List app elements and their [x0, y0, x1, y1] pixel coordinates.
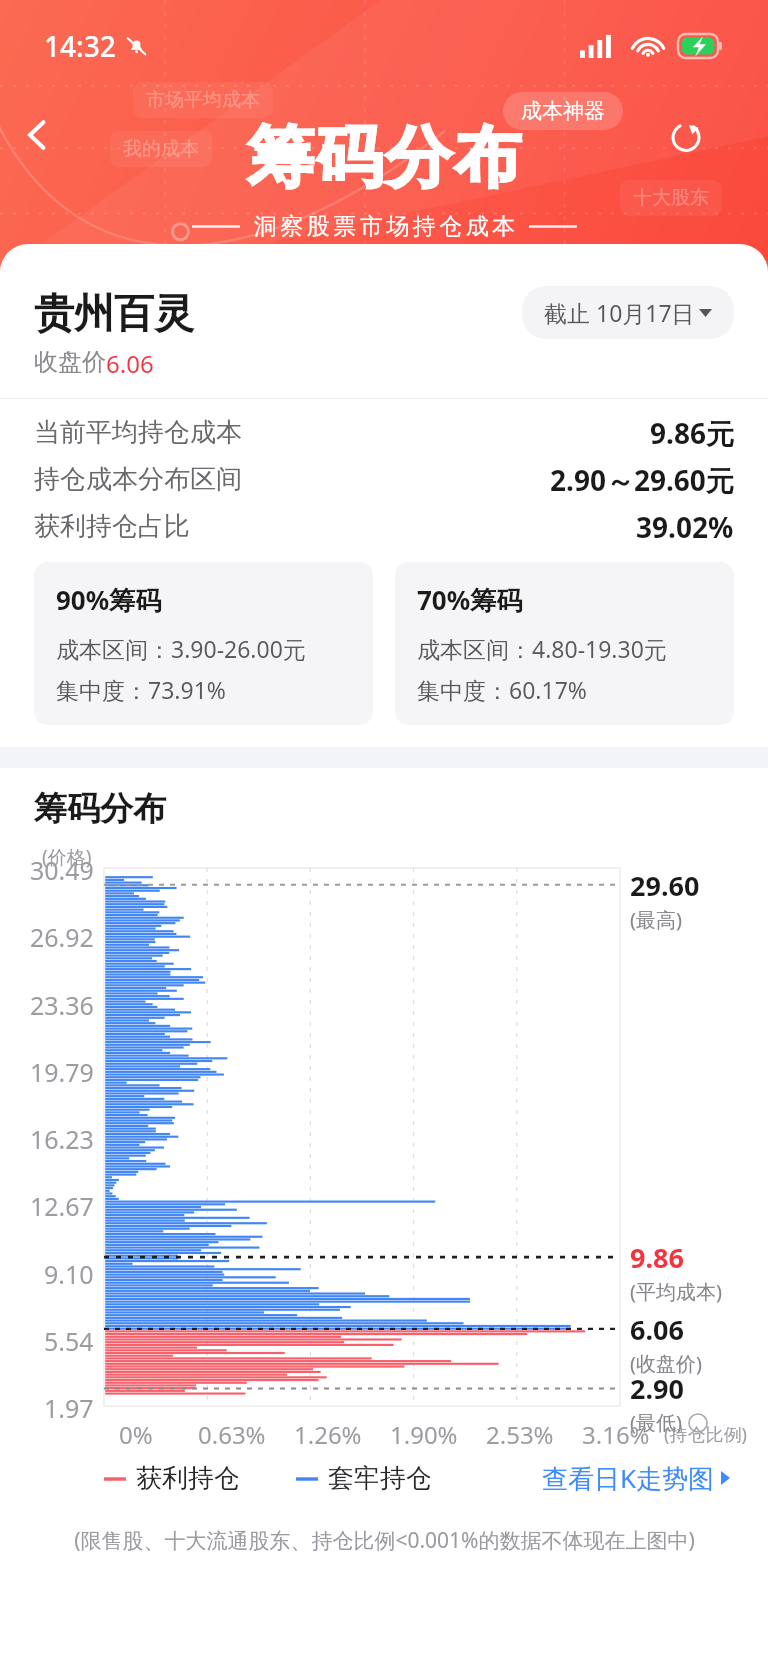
staticText: 30.49 — [30, 853, 94, 887]
staticText: 6.06 — [106, 347, 154, 380]
staticText: 截止 10月17日 — [544, 297, 695, 328]
button[interactable]: Back — [8, 106, 66, 164]
staticText: 我的成本 — [123, 137, 199, 161]
other: Help — [688, 1413, 708, 1433]
staticText: 洞察股票市场持仓成本 — [252, 212, 517, 241]
button[interactable]: Refresh — [658, 108, 714, 164]
staticText: 获利持仓占比 — [34, 510, 190, 543]
button[interactable]: 截止 10月17日 — [522, 286, 734, 339]
button[interactable]: 70%筹码 — [395, 562, 734, 725]
staticText: 1.97 — [44, 1391, 94, 1425]
staticText: 39.02% — [636, 508, 734, 546]
staticText: 成本区间：3.90-26.00元 — [56, 633, 306, 664]
button[interactable]: 成本神器 — [503, 92, 623, 130]
staticText: (价格) — [42, 844, 92, 870]
staticText: (最高) — [630, 906, 682, 933]
staticText: (收盘价) — [630, 1350, 702, 1377]
staticText: (限售股、十大流通股东、持仓比例<0.001%的数据不体现在上图中) — [74, 1526, 695, 1555]
staticText: 1.90% — [390, 1418, 458, 1451]
staticText: 3.16% — [582, 1418, 650, 1451]
staticText: 9.10 — [44, 1257, 94, 1291]
staticText: (持仓比例) — [664, 1422, 747, 1447]
button[interactable]: 套牢持仓 — [296, 1458, 432, 1499]
staticText: 套牢持仓 — [328, 1462, 432, 1495]
staticText: 0.63% — [198, 1418, 266, 1451]
staticText: 14:32 — [44, 27, 116, 65]
staticText: 成本区间：4.80-19.30元 — [417, 633, 667, 664]
staticText: 当前平均持仓成本 — [34, 416, 242, 449]
button[interactable]: 获利持仓 — [104, 1458, 240, 1499]
staticText: (最低) — [630, 1409, 682, 1436]
staticText: 9.86 — [630, 1239, 684, 1276]
button[interactable]: 查看日K走势图 — [538, 1456, 734, 1500]
staticText: 成本神器 — [521, 98, 605, 124]
staticText: 26.92 — [30, 920, 94, 954]
staticText: (平均成本) — [630, 1278, 722, 1305]
staticText: 19.79 — [30, 1055, 94, 1089]
staticText: 23.36 — [30, 988, 94, 1022]
staticText: 2.90～29.60元 — [550, 461, 734, 499]
staticText: 1.26% — [294, 1418, 362, 1451]
staticText: 9.86元 — [650, 414, 734, 452]
staticText: 收盘价 — [34, 347, 106, 377]
staticText: 集中度：60.17% — [417, 674, 587, 705]
staticText: 29.60 — [630, 867, 700, 904]
staticText: 0% — [119, 1418, 153, 1451]
staticText: 6.06 — [630, 1311, 684, 1348]
staticText: 2.53% — [486, 1418, 554, 1451]
staticText: 2.90 — [630, 1370, 684, 1407]
staticText: 90%筹码 — [56, 582, 162, 618]
staticText: 筹码分布 — [34, 788, 166, 830]
staticText: 获利持仓 — [136, 1462, 240, 1495]
staticText: 市场平均成本 — [146, 88, 260, 112]
staticText: 持仓成本分布区间 — [34, 463, 242, 496]
staticText: 集中度：73.91% — [56, 674, 226, 705]
staticText: 十大股东 — [633, 186, 709, 210]
staticText: 16.23 — [30, 1122, 94, 1156]
staticText: 5.54 — [44, 1324, 94, 1358]
staticText: 70%筹码 — [417, 582, 523, 618]
staticText: 贵州百灵 — [34, 288, 194, 338]
button[interactable]: 90%筹码 — [34, 562, 373, 725]
staticText: 12.67 — [30, 1189, 94, 1223]
staticText: 筹码分布 — [246, 116, 522, 199]
staticText: 查看日K走势图 — [542, 1460, 715, 1496]
